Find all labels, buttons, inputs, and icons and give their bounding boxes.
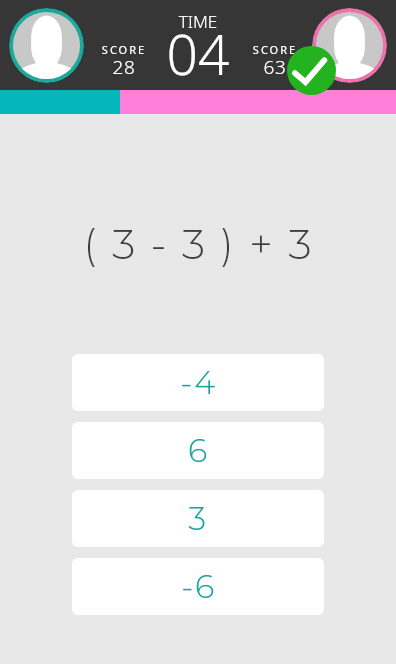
button[interactable]: 3: [72, 490, 324, 547]
staticText: 04: [150, 16, 246, 91]
other: Correct: [287, 46, 336, 95]
staticText: 6: [188, 431, 209, 470]
staticText: SCORE: [89, 42, 159, 57]
staticText: -6: [181, 567, 216, 606]
staticText: -4: [180, 363, 217, 402]
staticText: 63: [240, 54, 310, 80]
staticText: TIME: [150, 10, 246, 33]
button[interactable]: 6: [72, 422, 324, 479]
staticText: SCORE: [240, 42, 310, 57]
button[interactable]: -4: [72, 354, 324, 411]
staticText: 3: [188, 499, 208, 538]
staticText: 28: [89, 54, 159, 80]
button[interactable]: -6: [72, 558, 324, 615]
staticText: ( 3 - 3 ) + 3: [83, 218, 314, 269]
